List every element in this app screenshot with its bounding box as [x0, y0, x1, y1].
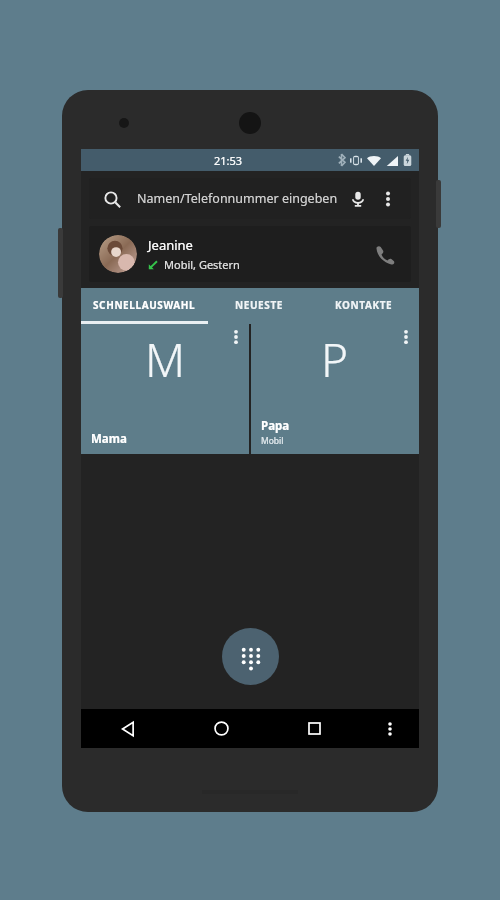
- staticText: Papa: [261, 418, 290, 434]
- staticText: SCHNELLAUSWAHL: [93, 298, 196, 312]
- staticText: Mama: [91, 431, 127, 447]
- button[interactable]: Recents: [268, 709, 361, 748]
- button[interactable]: Call: [367, 237, 401, 271]
- staticText: Jeanine: [148, 236, 193, 254]
- staticText: 21:53: [214, 153, 243, 168]
- staticText: KONTAKTE: [335, 298, 393, 312]
- button[interactable]: Back: [81, 709, 175, 748]
- button[interactable]: Jeanine: [89, 226, 411, 282]
- button[interactable]: Menu: [361, 709, 419, 748]
- button[interactable]: Contact options: [223, 324, 249, 350]
- button[interactable]: P: [251, 324, 419, 454]
- staticText: M: [145, 328, 186, 391]
- button[interactable]: KONTAKTE: [309, 288, 419, 321]
- button[interactable]: More options: [375, 186, 401, 212]
- button[interactable]: Home: [175, 709, 268, 748]
- button[interactable]: Dialpad: [222, 628, 279, 685]
- staticText: Mobil, Gestern: [164, 257, 240, 272]
- button[interactable]: Voice search: [345, 186, 371, 212]
- staticText: P: [321, 328, 349, 391]
- other: Search: [99, 186, 125, 212]
- button[interactable]: NEUESTE: [208, 288, 309, 321]
- staticText: Namen/Telefonnummer eingeben: [137, 190, 338, 207]
- staticText: Mobil: [261, 435, 284, 447]
- staticText: NEUESTE: [235, 298, 283, 312]
- button[interactable]: Search: [89, 178, 411, 219]
- button[interactable]: SCHNELLAUSWAHL: [81, 288, 208, 321]
- button[interactable]: Contact options: [393, 324, 419, 350]
- button[interactable]: M: [81, 324, 249, 454]
